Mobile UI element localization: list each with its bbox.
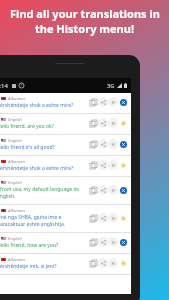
- button[interactable]: Favorite: [118, 213, 128, 223]
- button[interactable]: English: [0, 135, 131, 156]
- button[interactable]: Share: [98, 139, 108, 149]
- button[interactable]: Copy: [88, 97, 98, 107]
- button[interactable]: Delete: [118, 97, 128, 107]
- button[interactable]: Delete: [118, 185, 128, 195]
- button[interactable]: Favorite: [118, 160, 128, 170]
- staticText: Unë nga SHBA, gjuha ime e paracaktuar es…: [0, 214, 88, 228]
- staticText: Hello friend, are you ok?: [0, 123, 54, 130]
- staticText: English: [8, 137, 22, 143]
- button[interactable]: Copy: [88, 160, 98, 170]
- button[interactable]: English: [0, 114, 131, 135]
- button[interactable]: Share: [98, 237, 108, 247]
- staticText: English: [8, 235, 22, 241]
- button[interactable]: Speak: [108, 213, 118, 223]
- button[interactable]: English: [0, 177, 131, 205]
- staticText: English: [8, 116, 22, 122]
- button[interactable]: Speak: [108, 139, 118, 149]
- staticText: Albanian: [8, 95, 25, 101]
- button[interactable]: Copy: [88, 139, 98, 149]
- button[interactable]: Copy: [88, 185, 98, 195]
- staticText: 2:14: [0, 82, 8, 90]
- staticText: Albanian: [8, 207, 25, 213]
- button[interactable]: Albanian: [0, 156, 131, 177]
- button[interactable]: Share: [98, 160, 108, 170]
- button[interactable]: Albanian: [0, 254, 131, 275]
- staticText: Hello friend, how are you?: [0, 242, 59, 249]
- staticText: Find all your translations in: [10, 6, 160, 21]
- staticText: 3G: [107, 82, 115, 89]
- button[interactable]: Share: [98, 258, 108, 268]
- button[interactable]: Share: [98, 213, 108, 223]
- button[interactable]: Speak: [108, 118, 118, 128]
- button[interactable]: Delete: [118, 237, 128, 247]
- button[interactable]: Speak: [108, 237, 118, 247]
- staticText: Hello friend it's all good?: [0, 144, 55, 151]
- staticText: Përshëndetje shok a eshte mire?: [0, 102, 74, 109]
- button[interactable]: Share: [98, 118, 108, 128]
- staticText: English: [8, 179, 22, 185]
- button[interactable]: Favorite: [118, 118, 128, 128]
- button[interactable]: Speak: [108, 97, 118, 107]
- button[interactable]: Copy: [88, 237, 98, 247]
- button[interactable]: Speak: [108, 160, 118, 170]
- button[interactable]: Copy: [88, 258, 98, 268]
- staticText: the History menu!: [35, 21, 134, 36]
- staticText: I from usa, my default language its engl…: [0, 186, 88, 200]
- button[interactable]: Share: [98, 97, 108, 107]
- button[interactable]: Favorite: [118, 258, 128, 268]
- button[interactable]: Albanian: [0, 205, 131, 233]
- staticText: Albanian: [8, 256, 25, 262]
- button[interactable]: Share: [98, 185, 108, 195]
- button[interactable]: Speak: [108, 185, 118, 195]
- button[interactable]: Copy: [88, 213, 98, 223]
- button[interactable]: English: [0, 233, 131, 254]
- staticText: Albanian: [8, 158, 25, 164]
- button[interactable]: Speak: [108, 258, 118, 268]
- button[interactable]: Copy: [88, 118, 98, 128]
- button[interactable]: Delete: [118, 139, 128, 149]
- button[interactable]: Albanian: [0, 93, 131, 114]
- staticText: Përshëndetje mik, si jeni?: [0, 263, 57, 270]
- staticText: Përshëndetje shok a eshte mire?: [0, 165, 74, 172]
